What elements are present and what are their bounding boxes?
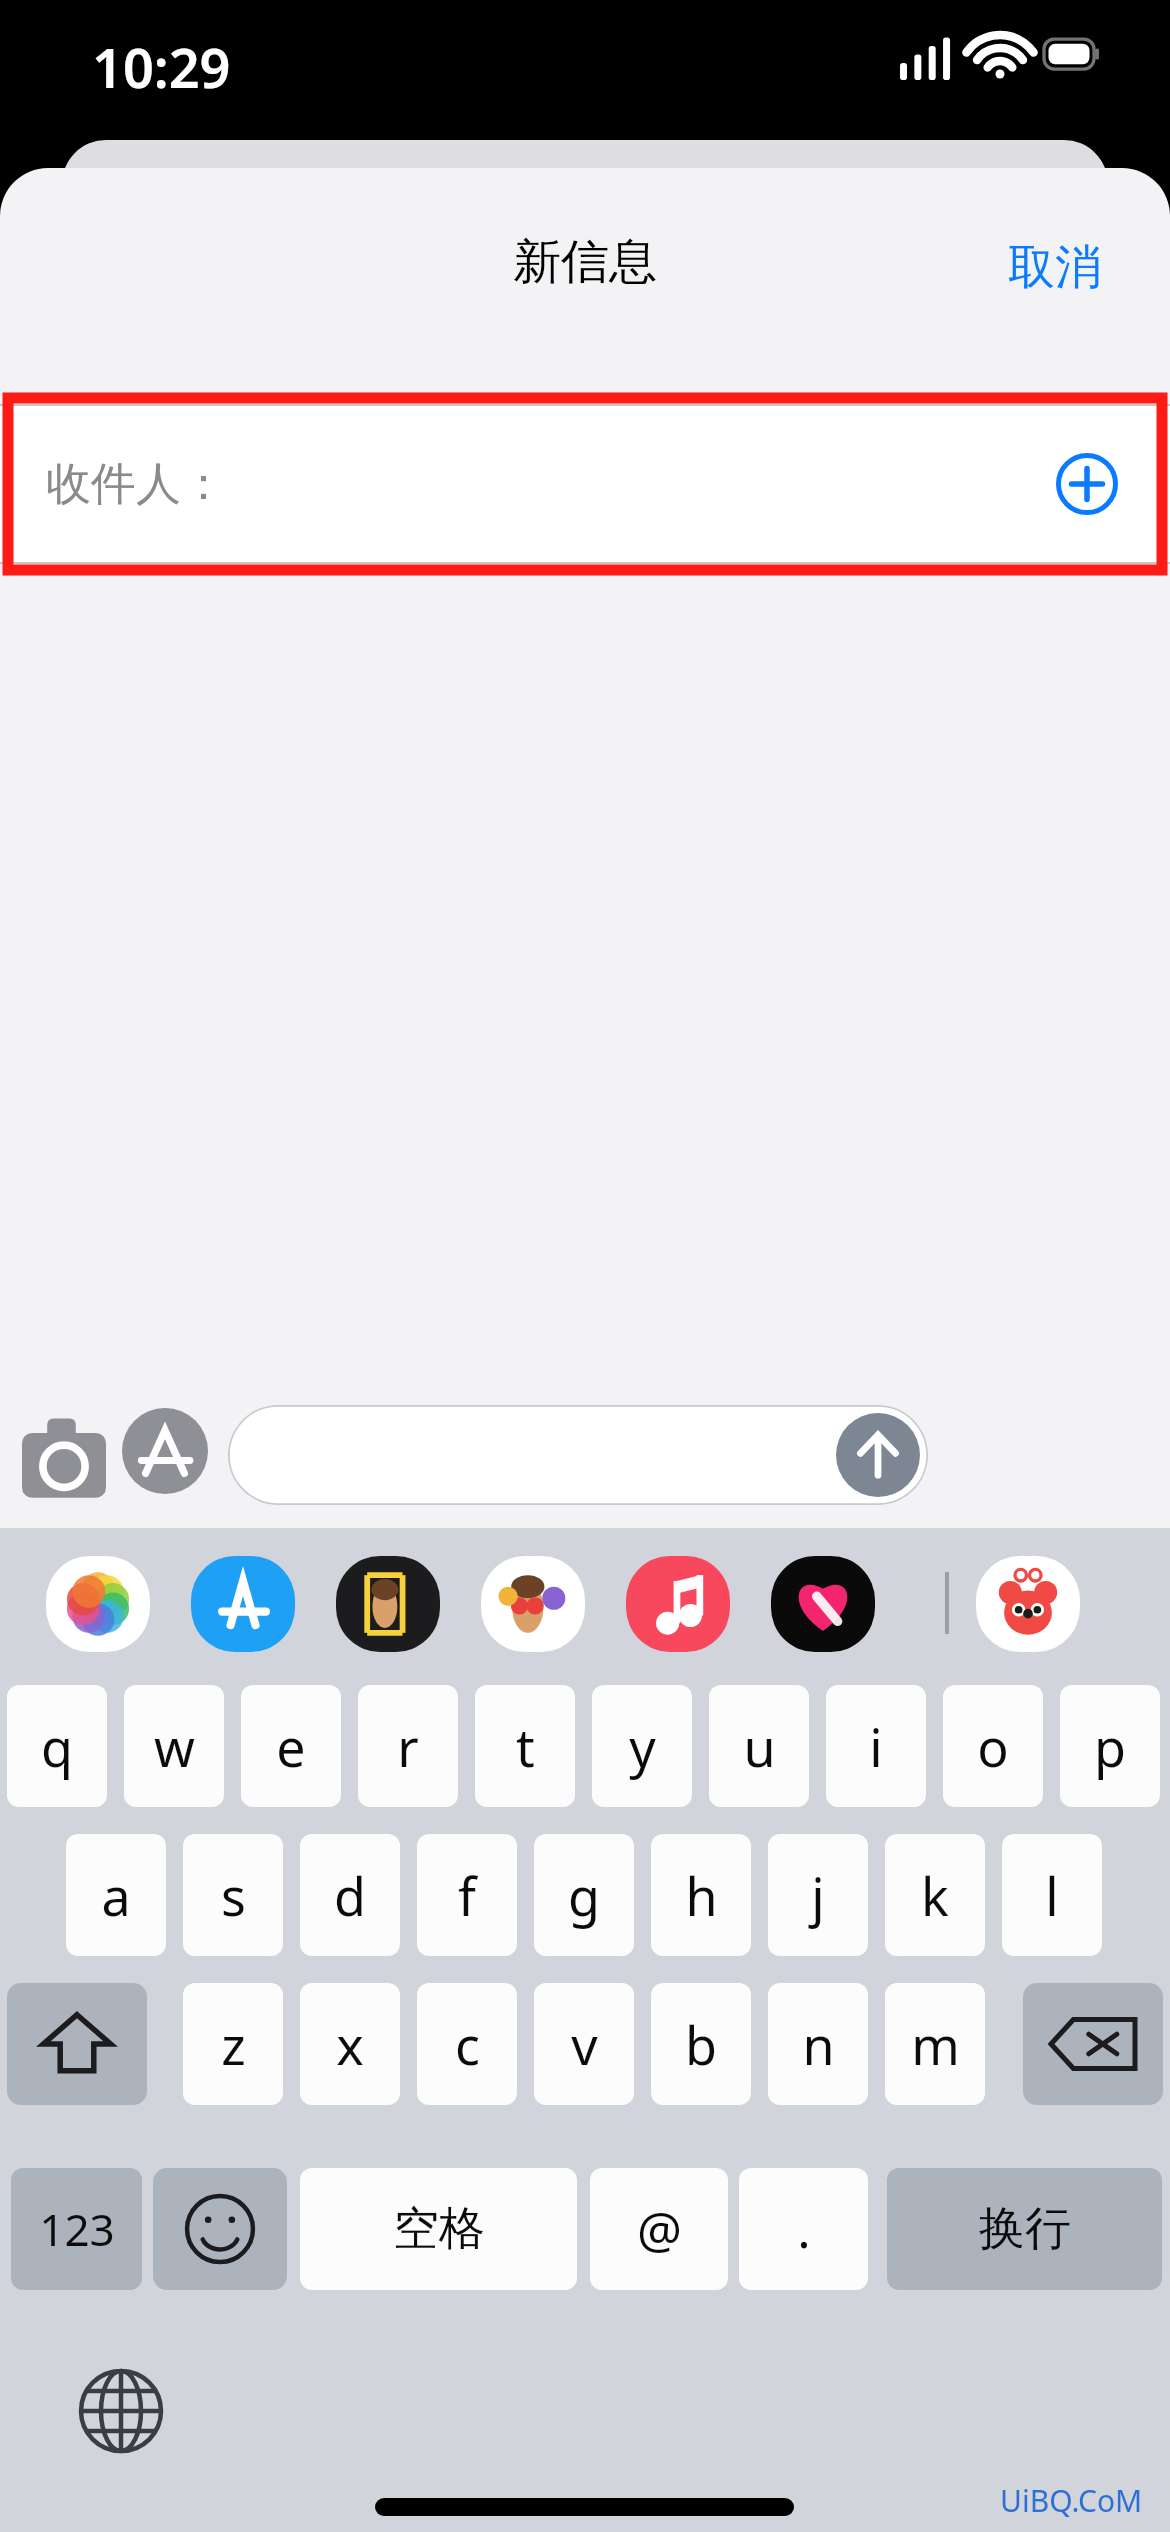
- staticText: c: [455, 2009, 480, 2080]
- button[interactable]: Photos: [46, 1556, 150, 1652]
- staticText: h: [685, 1860, 718, 1931]
- staticText: @: [637, 2195, 682, 2263]
- staticText: b: [685, 2009, 717, 2080]
- staticText: 取消: [1008, 238, 1102, 297]
- button[interactable]: Health: [771, 1556, 875, 1652]
- button[interactable]: e: [241, 1685, 341, 1807]
- staticText: t: [516, 1711, 535, 1782]
- button[interactable]: v: [534, 1983, 634, 2105]
- button[interactable]: a: [66, 1834, 166, 1956]
- button[interactable]: Add contact: [1056, 453, 1118, 515]
- button[interactable]: s: [183, 1834, 283, 1956]
- button[interactable]: .: [739, 2168, 868, 2290]
- button[interactable]: Apple Music: [626, 1556, 730, 1652]
- staticText: l: [1045, 1860, 1059, 1931]
- staticText: a: [101, 1860, 131, 1931]
- button[interactable]: App Store: [122, 1408, 208, 1494]
- staticText: x: [336, 2009, 364, 2080]
- button[interactable]: y: [592, 1685, 692, 1807]
- staticText: m: [911, 2009, 960, 2080]
- staticText: 123: [39, 2199, 115, 2259]
- button[interactable]: Send: [836, 1413, 920, 1497]
- staticText: 收件人：: [46, 456, 226, 513]
- button[interactable]: n: [768, 1983, 868, 2105]
- button[interactable]: f: [417, 1834, 517, 1956]
- button[interactable]: Camera: [22, 1415, 106, 1505]
- staticText: p: [1094, 1711, 1126, 1782]
- staticText: k: [921, 1860, 949, 1931]
- staticText: 新信息: [0, 232, 1170, 292]
- staticText: u: [743, 1711, 776, 1782]
- staticText: q: [41, 1711, 73, 1782]
- staticText: 换行: [979, 2200, 1071, 2258]
- button[interactable]: t: [475, 1685, 575, 1807]
- staticText: f: [458, 1860, 476, 1931]
- button[interactable]: o: [943, 1685, 1043, 1807]
- button[interactable]: 空格: [300, 2168, 577, 2290]
- staticText: g: [568, 1860, 600, 1931]
- button[interactable]: h: [651, 1834, 751, 1956]
- staticText: e: [276, 1711, 306, 1782]
- staticText: UiBQ.CoM: [1000, 2480, 1143, 2521]
- staticText: d: [334, 1860, 366, 1931]
- staticText: y: [629, 1711, 656, 1782]
- button[interactable]: u: [709, 1685, 809, 1807]
- button[interactable]: p: [1060, 1685, 1160, 1807]
- button[interactable]: c: [417, 1983, 517, 2105]
- button[interactable]: r: [358, 1685, 458, 1807]
- button[interactable]: 123: [11, 2168, 142, 2290]
- staticText: n: [802, 2009, 835, 2080]
- button[interactable]: g: [534, 1834, 634, 1956]
- button[interactable]: j: [768, 1834, 868, 1956]
- button[interactable]: m: [885, 1983, 985, 2105]
- staticText: o: [977, 1711, 1009, 1782]
- button[interactable]: 收件人：: [0, 405, 1170, 563]
- staticText: s: [221, 1860, 246, 1931]
- button[interactable]: 换行: [887, 2168, 1162, 2290]
- button[interactable]: Memoji: [336, 1556, 440, 1652]
- staticText: 10:29: [92, 30, 231, 104]
- staticText: 空格: [393, 2200, 485, 2258]
- button[interactable]: Send: [228, 1405, 928, 1505]
- button[interactable]: x: [300, 1983, 400, 2105]
- button[interactable]: Switch keyboard: [78, 2368, 164, 2454]
- button[interactable]: i: [826, 1685, 926, 1807]
- staticText: i: [869, 1711, 883, 1782]
- button[interactable]: w: [124, 1685, 224, 1807]
- button[interactable]: z: [183, 1983, 283, 2105]
- staticText: r: [397, 1711, 419, 1782]
- button[interactable]: App Store: [191, 1556, 295, 1652]
- button[interactable]: Stickers: [976, 1556, 1080, 1652]
- button[interactable]: k: [885, 1834, 985, 1956]
- button[interactable]: 取消: [940, 215, 1140, 319]
- staticText: j: [811, 1860, 825, 1931]
- button[interactable]: d: [300, 1834, 400, 1956]
- staticText: v: [571, 2009, 598, 2080]
- staticText: w: [154, 1711, 195, 1782]
- button[interactable]: l: [1002, 1834, 1102, 1956]
- button[interactable]: b: [651, 1983, 751, 2105]
- button[interactable]: @: [590, 2168, 728, 2290]
- staticText: z: [221, 2009, 246, 2080]
- button[interactable]: Shift: [7, 1983, 147, 2105]
- button[interactable]: Memoji stickers: [481, 1556, 585, 1652]
- button[interactable]: q: [7, 1685, 107, 1807]
- staticText: .: [797, 2195, 811, 2263]
- button[interactable]: Emoji: [153, 2168, 287, 2290]
- button[interactable]: Backspace: [1023, 1983, 1163, 2105]
